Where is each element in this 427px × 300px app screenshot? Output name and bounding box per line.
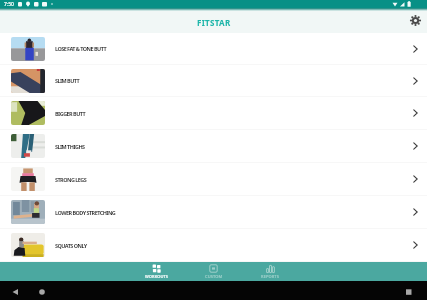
staticText: WORKOUTS	[145, 274, 169, 279]
staticText: CUSTOM	[205, 274, 223, 279]
staticText: FITSTAR	[197, 17, 231, 28]
button[interactable]: LOWER BODY STRETCHING	[0, 196, 427, 229]
button[interactable]: CUSTOM	[185, 262, 242, 281]
staticText: LOWER BODY STRETCHING	[55, 209, 116, 216]
button[interactable]: REPORTS	[242, 262, 299, 281]
button[interactable]: BIGGER BUTT	[0, 97, 427, 130]
staticText: BIGGER BUTT	[55, 110, 86, 117]
staticText: 7:50	[4, 1, 14, 8]
button[interactable]: WORKOUTS	[128, 262, 185, 281]
staticText: SQUATS ONLY	[55, 242, 87, 249]
button[interactable]: LOSE FAT & TONE BUTT	[0, 33, 427, 65]
button[interactable]: SLIM THIGHS	[0, 130, 427, 163]
staticText: SLIM BUTT	[55, 77, 80, 84]
button[interactable]	[397, 281, 427, 300]
staticText: LOSE FAT & TONE BUTT	[55, 45, 107, 52]
staticText: REPORTS	[261, 274, 280, 279]
staticText: SLIM THIGHS	[55, 143, 85, 150]
button[interactable]	[30, 281, 60, 300]
button[interactable]: SQUATS ONLY	[0, 229, 427, 262]
button[interactable]: STRONG LEGS	[0, 163, 427, 196]
staticText: STRONG LEGS	[55, 176, 87, 183]
button[interactable]	[0, 281, 30, 300]
button[interactable]	[408, 13, 422, 27]
button[interactable]: SLIM BUTT	[0, 65, 427, 97]
